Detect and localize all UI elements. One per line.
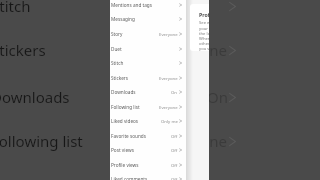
button[interactable]: Downloads [110, 84, 186, 99]
button[interactable]: Profile views [190, 4, 209, 51]
staticText: Stitch [0, 0, 31, 16]
button[interactable]: Following list [110, 99, 186, 114]
button[interactable]: Profile views [110, 157, 186, 172]
button[interactable]: Stitch [110, 55, 186, 70]
staticText: Downloads [0, 87, 70, 107]
button[interactable]: Duet [110, 41, 186, 56]
button[interactable]: Liked comments [110, 171, 186, 180]
button[interactable]: Messaging [110, 11, 186, 26]
staticText: Everyone [162, 40, 228, 60]
staticText: Stickers [0, 40, 46, 60]
staticText: Everyone [159, 75, 178, 81]
staticText: Following list [111, 104, 140, 110]
staticText: Everyone [159, 104, 178, 110]
staticText: Off [171, 147, 178, 153]
staticText: On [171, 89, 178, 95]
staticText: Off [171, 162, 178, 168]
button[interactable]: Post views [110, 142, 186, 157]
button[interactable]: Mentions and tags [110, 0, 186, 12]
staticText: Downloads [111, 89, 136, 95]
staticText: Post views [111, 147, 134, 153]
button[interactable]: Stickers [110, 70, 186, 85]
staticText: Everyone [159, 31, 178, 37]
staticText: Stickers [111, 75, 129, 81]
staticText: Everyone [162, 131, 228, 151]
staticText: Profile views [111, 162, 139, 168]
staticText: Story [111, 31, 123, 37]
staticText: Stitch [111, 60, 124, 66]
staticText: Messaging [111, 16, 135, 22]
staticText: Only me [161, 118, 178, 124]
button[interactable]: Story [110, 26, 186, 41]
staticText: Duet [111, 46, 122, 52]
staticText: See who viewed your profile in the last … [199, 20, 209, 51]
staticText: Profile views [199, 11, 209, 18]
staticText: Liked videos [111, 118, 139, 124]
staticText: Liked comments [111, 176, 148, 180]
staticText: Off [171, 133, 178, 139]
button[interactable]: Favorite sounds [110, 128, 186, 143]
staticText: Favorite sounds [111, 133, 146, 139]
staticText: Following list [0, 131, 83, 151]
staticText: Mentions and tags [111, 2, 152, 8]
staticText: Off [171, 176, 178, 180]
button[interactable]: Liked videos [110, 113, 186, 128]
staticText: On [207, 87, 228, 107]
